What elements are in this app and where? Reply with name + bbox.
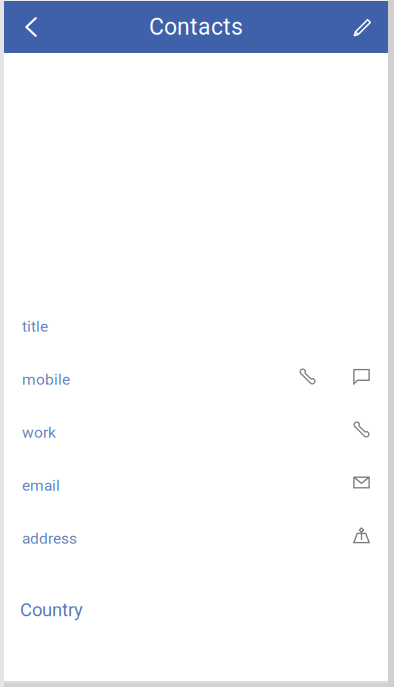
staticText: Contacts: [149, 13, 243, 40]
button[interactable]: Call mobile: [299, 368, 316, 385]
staticText: title: [22, 317, 48, 336]
button[interactable]: Edit: [338, 1, 388, 53]
button[interactable]: Send email: [353, 474, 370, 491]
staticText: email: [22, 476, 60, 495]
button[interactable]: Open address in maps: [353, 527, 370, 544]
button[interactable]: Message mobile: [353, 368, 370, 385]
staticText: mobile: [22, 370, 70, 389]
button[interactable]: Back: [4, 1, 54, 53]
staticText: Country: [20, 599, 83, 621]
button[interactable]: Call work: [353, 421, 370, 438]
staticText: address: [22, 529, 77, 548]
staticText: work: [22, 423, 56, 442]
